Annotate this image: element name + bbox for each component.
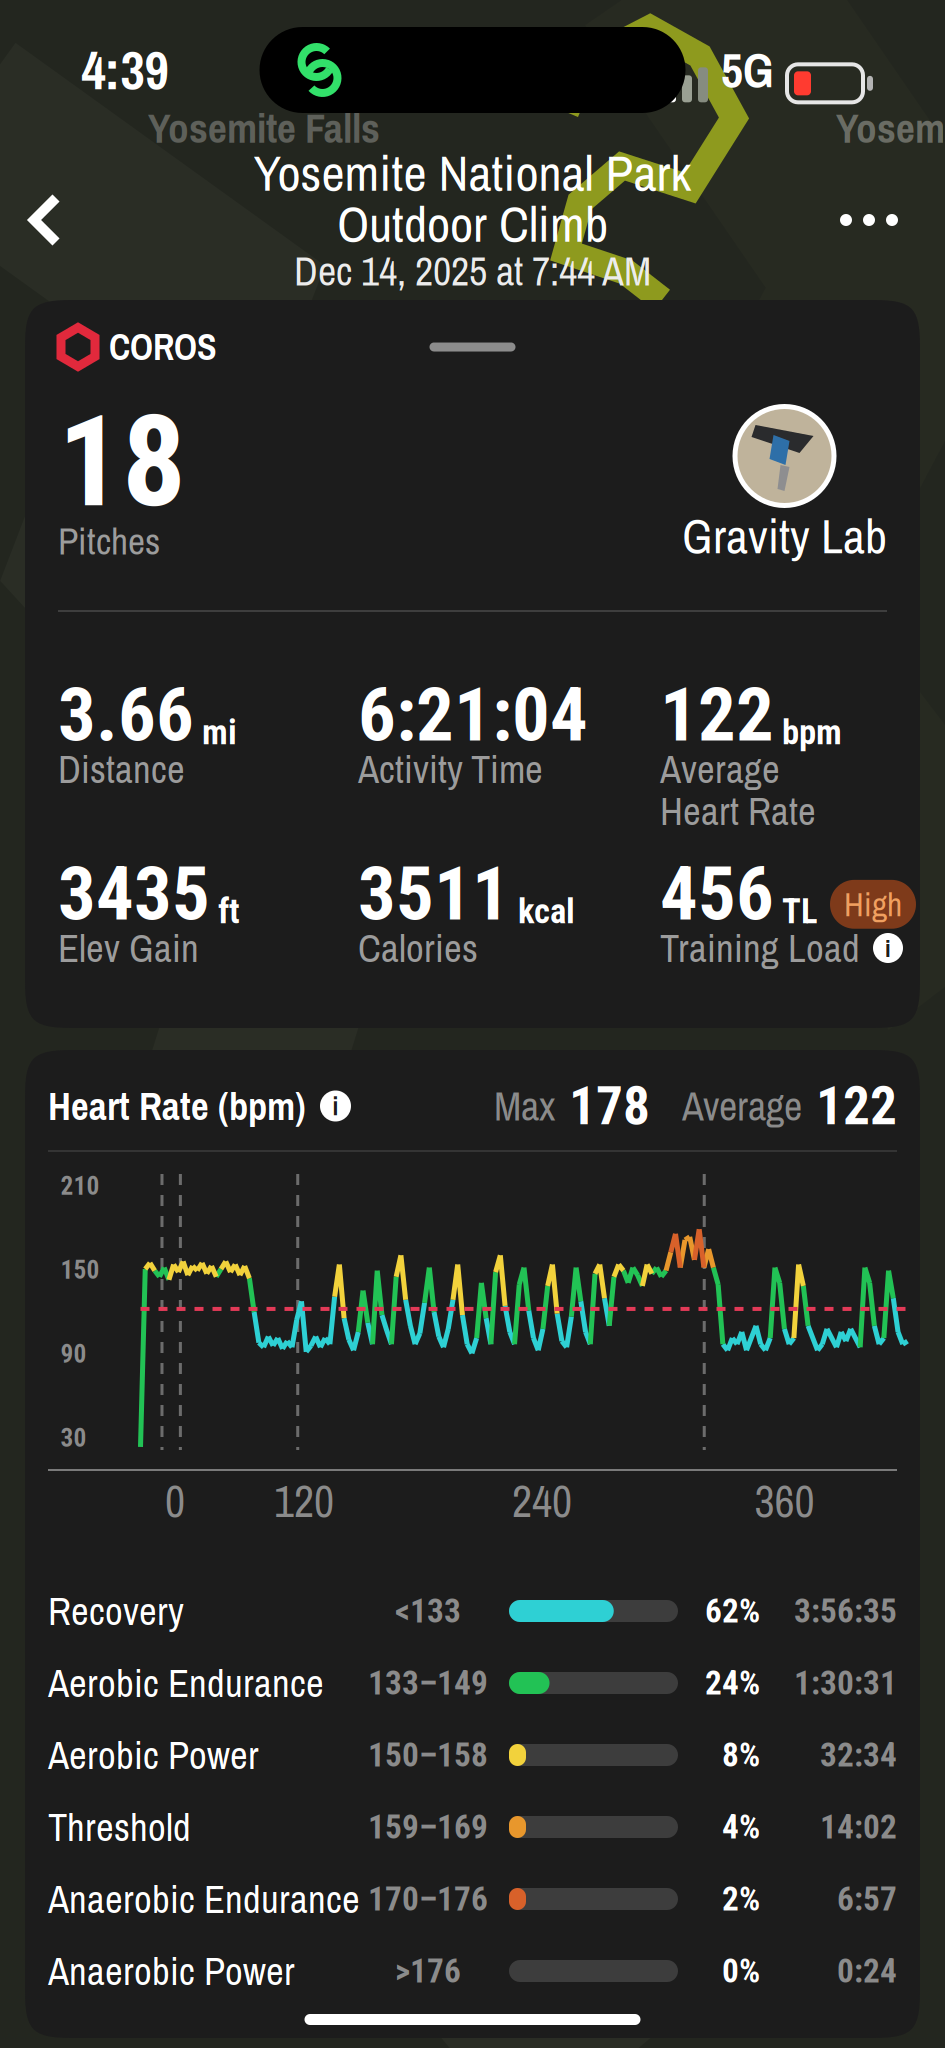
staticText: bpm — [782, 712, 842, 753]
staticText: 62% — [705, 1591, 760, 1631]
staticText: High — [844, 882, 902, 927]
staticText: Yosem — [836, 100, 945, 156]
staticText: Recovery — [48, 1585, 184, 1637]
staticText: Dec 14, 2025 at 7:44 AM — [294, 244, 651, 298]
staticText: Aerobic Power — [48, 1729, 259, 1781]
staticText: Aerobic Endurance — [48, 1657, 324, 1709]
staticText: COROS — [109, 323, 217, 371]
button[interactable]: Back — [0, 157, 97, 283]
staticText: Heart Rate — [660, 785, 816, 837]
staticText: 6:57 — [837, 1879, 897, 1919]
staticText: Anaerobic Power — [48, 1945, 295, 1997]
staticText: 456 — [660, 850, 774, 938]
staticText: Gravity Lab — [682, 504, 887, 568]
staticText: i — [885, 931, 891, 965]
staticText: 0% — [722, 1951, 760, 1991]
staticText: i — [332, 1089, 338, 1123]
staticText: Max — [494, 1079, 555, 1133]
staticText: 170–176 — [368, 1879, 488, 1919]
staticText: 90 — [60, 1339, 86, 1369]
staticText: 159–169 — [368, 1807, 488, 1847]
staticText: >176 — [395, 1951, 461, 1991]
staticText: Outdoor Climb — [337, 189, 608, 258]
staticText: 4% — [722, 1807, 760, 1847]
staticText: Distance — [58, 743, 185, 795]
staticText: 3511 — [358, 850, 510, 938]
staticText: 0:24 — [837, 1951, 897, 1991]
button[interactable]: More options — [802, 157, 945, 283]
staticText: 24% — [705, 1663, 760, 1703]
staticText: 3435 — [58, 850, 210, 938]
staticText: 30 — [60, 1423, 86, 1453]
staticText: ft — [218, 891, 240, 932]
staticText: 240 — [512, 1471, 572, 1531]
staticText: 120 — [274, 1471, 334, 1531]
staticText: 150–158 — [368, 1735, 488, 1775]
staticText: Pitches — [58, 516, 160, 566]
staticText: Anaerobic Endurance — [48, 1873, 360, 1925]
staticText: 133–149 — [368, 1663, 488, 1703]
staticText: Average — [682, 1079, 802, 1133]
staticText: 6:21:04 — [358, 671, 588, 759]
staticText: kcal — [518, 891, 575, 932]
staticText: 122 — [660, 671, 774, 759]
staticText: Calories — [358, 922, 478, 974]
staticText: 150 — [60, 1255, 99, 1285]
staticText: Yosemite Falls — [148, 100, 380, 156]
staticText: 178 — [569, 1075, 650, 1137]
staticText: Average — [660, 743, 780, 795]
staticText: 0 — [165, 1471, 185, 1531]
staticText: 1:30:31 — [794, 1663, 897, 1703]
staticText: 122 — [816, 1075, 897, 1137]
staticText: 32:34 — [820, 1735, 897, 1775]
staticText: 5G — [721, 38, 774, 102]
staticText: Threshold — [48, 1801, 191, 1853]
staticText: 210 — [60, 1171, 99, 1201]
staticText: Yosemite National Park — [253, 138, 691, 207]
staticText: 360 — [754, 1471, 814, 1531]
staticText: 3.66 — [58, 671, 194, 759]
staticText: 4:39 — [81, 34, 168, 106]
staticText: TL — [782, 891, 818, 932]
staticText: 18 — [58, 388, 186, 536]
staticText: Elev Gain — [58, 922, 199, 974]
staticText: 14:02 — [820, 1807, 897, 1847]
staticText: Heart Rate (bpm) — [48, 1080, 306, 1132]
staticText: 2% — [722, 1879, 760, 1919]
staticText: mi — [202, 712, 237, 753]
staticText: <133 — [395, 1591, 461, 1631]
staticText: Activity Time — [358, 743, 543, 795]
staticText: 3:56:35 — [794, 1591, 897, 1631]
staticText: Training Load — [660, 922, 860, 974]
staticText: 8% — [722, 1735, 760, 1775]
